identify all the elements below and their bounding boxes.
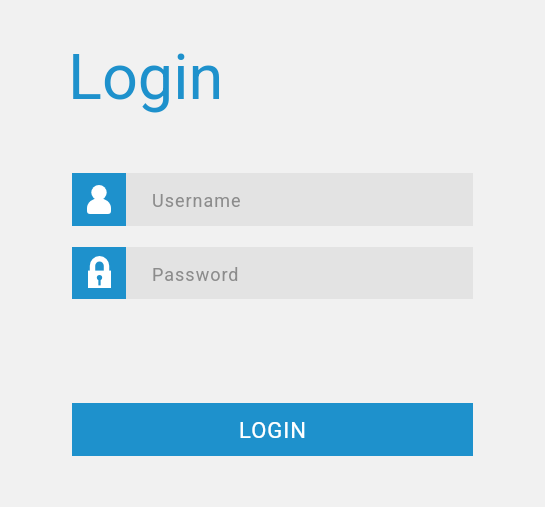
staticText: Username [152, 190, 242, 211]
staticText: Password [152, 264, 240, 285]
staticText: Login [68, 41, 224, 115]
staticText: LOGIN [239, 418, 307, 444]
other: Username [72, 173, 126, 226]
button[interactable]: LOGIN [72, 403, 473, 456]
other: Password [72, 247, 126, 299]
button[interactable]: Password [72, 247, 473, 299]
button[interactable]: Username [72, 173, 473, 226]
